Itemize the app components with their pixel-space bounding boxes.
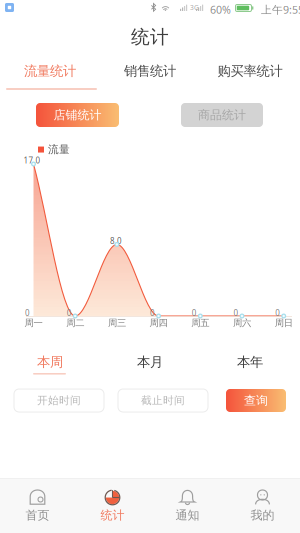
button[interactable]: 截止时间 (118, 389, 208, 412)
button[interactable]: 统计 (75, 478, 150, 533)
button[interactable]: 通知 (150, 478, 225, 533)
staticText: 17.0 (23, 155, 40, 166)
button[interactable]: 商品统计 (181, 103, 263, 127)
button[interactable]: 销售统计 (100, 62, 200, 80)
button[interactable]: 本周 (0, 354, 100, 370)
staticText: 周二 (66, 317, 84, 329)
staticText: 首页 (25, 508, 49, 523)
staticText: 周三 (108, 317, 126, 329)
staticText: 本月 (137, 354, 163, 370)
button[interactable]: 开始时间 (14, 389, 104, 412)
staticText: 周日 (275, 317, 293, 329)
staticText: 周六 (233, 317, 251, 329)
staticText: 0 (192, 307, 197, 318)
staticText: 商品统计 (198, 108, 246, 122)
staticText: 截止时间 (141, 394, 185, 407)
staticText: 8.0 (110, 235, 122, 246)
staticText: 店铺统计 (53, 108, 101, 122)
staticText: 销售统计 (124, 63, 176, 79)
staticText: 周一 (24, 317, 42, 329)
staticText: 周五 (191, 317, 209, 329)
staticText: 统计 (100, 508, 124, 523)
staticText: 0 (150, 307, 155, 318)
button[interactable]: 店铺统计 (36, 103, 119, 127)
staticText: 3G (190, 3, 199, 12)
staticText: 统计 (131, 25, 169, 48)
staticText: 查询 (244, 393, 268, 408)
button[interactable]: 流量统计 (0, 62, 100, 80)
staticText: 0 (233, 307, 238, 318)
staticText: 本年 (237, 354, 263, 370)
button[interactable]: 本年 (200, 354, 300, 370)
button[interactable]: 我的 (225, 478, 300, 533)
button[interactable]: 本月 (100, 354, 200, 370)
staticText: 60% (210, 2, 231, 17)
staticText: 购买率统计 (217, 63, 282, 79)
staticText: 我的 (250, 508, 274, 523)
staticText: 0 (67, 307, 72, 318)
staticText: 0 (25, 307, 30, 318)
staticText: 流量统计 (24, 63, 76, 79)
button[interactable]: 查询 (226, 389, 286, 412)
button[interactable]: 首页 (0, 478, 75, 533)
staticText: 0 (275, 307, 280, 318)
staticText: 通知 (175, 508, 199, 523)
button[interactable]: 购买率统计 (200, 62, 300, 80)
staticText: 上午9:55 (261, 2, 300, 17)
staticText: 开始时间 (37, 394, 81, 407)
staticText: 流量 (48, 143, 70, 156)
staticText: 本周 (37, 354, 63, 370)
staticText: 周四 (150, 317, 168, 329)
